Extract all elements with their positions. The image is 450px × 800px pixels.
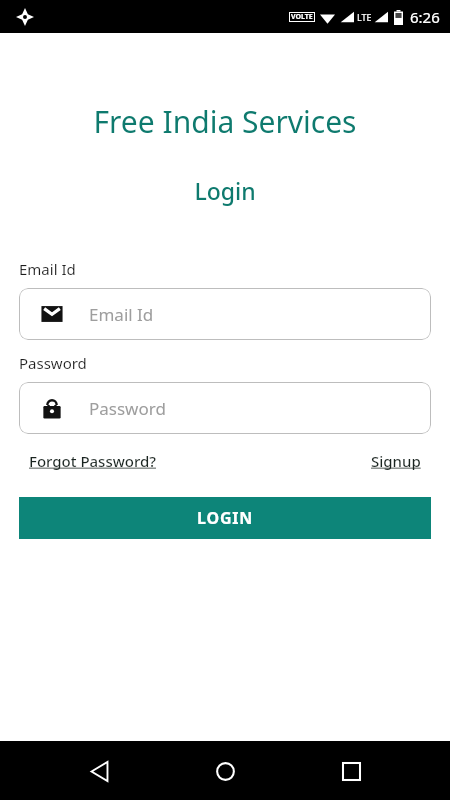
button[interactable]: Back [72,744,126,798]
staticText: Email Id [19,259,76,279]
button[interactable]: Email Id [19,288,431,340]
staticText: Signup [371,451,421,471]
staticText: LTE [357,11,372,23]
button[interactable]: Signup [371,451,421,471]
staticText: Login [0,175,450,206]
staticText: VOLTE [291,12,313,22]
staticText: Free India Services [0,101,450,142]
staticText: Password [19,353,87,373]
staticText: LOGIN [197,507,254,529]
staticText: Forgot Password? [29,451,157,471]
staticText: 6:26 [410,7,440,27]
staticText: Password [89,397,166,420]
button[interactable]: Recent apps [324,744,378,798]
staticText: Email Id [89,303,154,326]
button[interactable]: Password [19,382,431,434]
button[interactable]: LOGIN [19,497,431,539]
button[interactable]: Forgot Password? [29,451,157,471]
button[interactable]: Home [198,744,252,798]
